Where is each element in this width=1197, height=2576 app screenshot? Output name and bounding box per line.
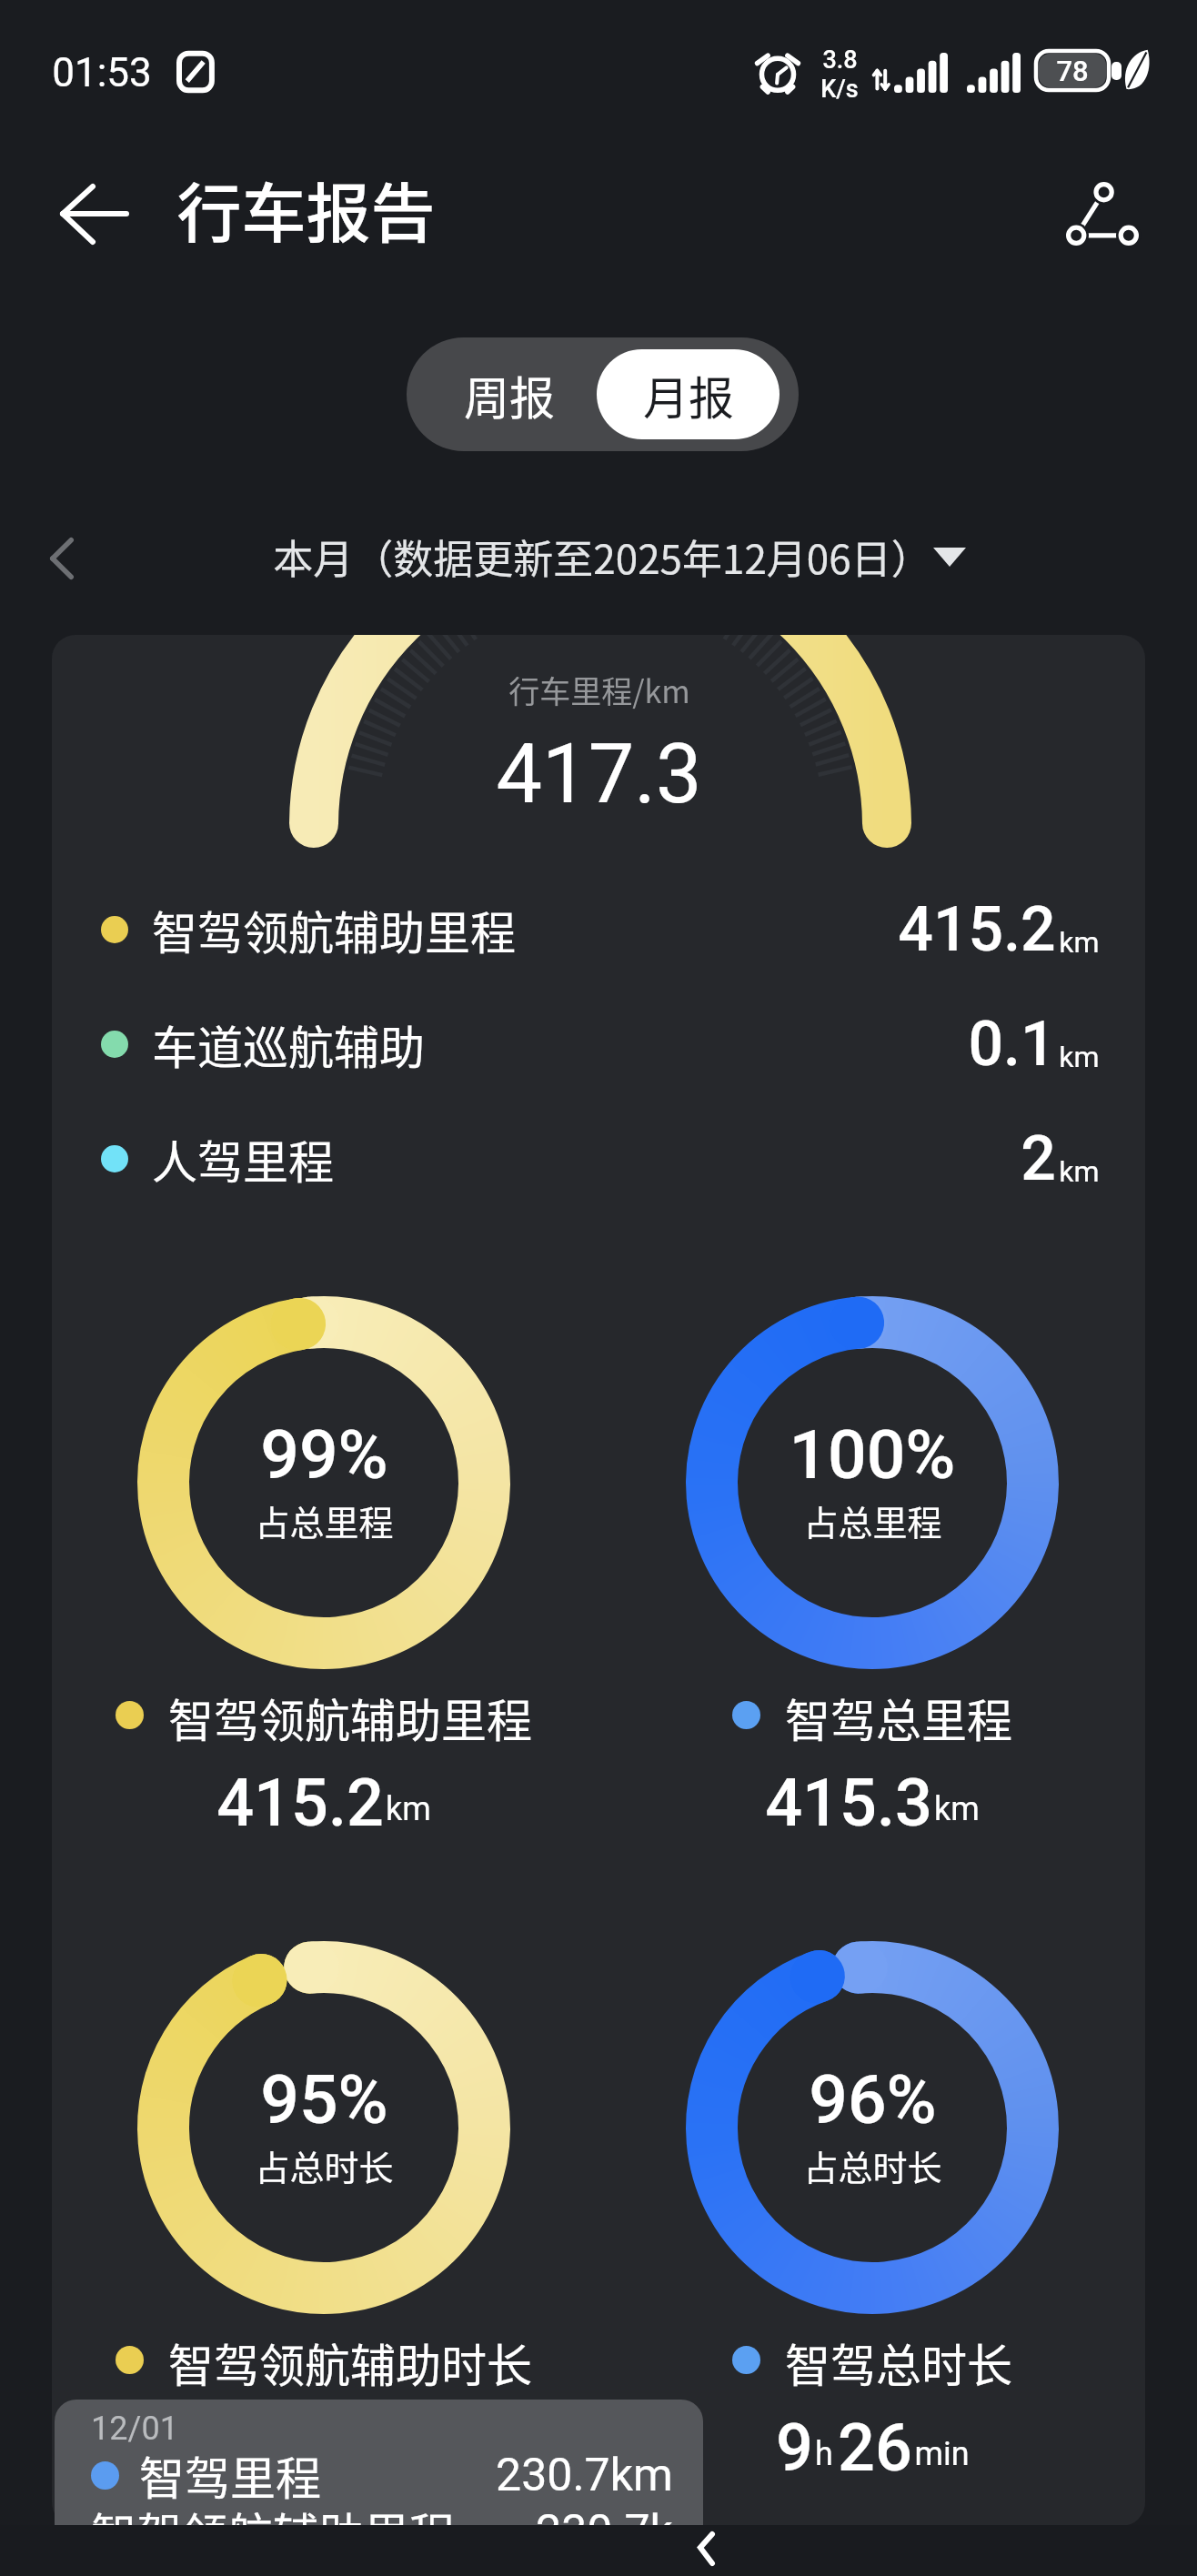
staticText: 智驾领航辅助里程 (168, 1685, 532, 1745)
staticText: 行车里程/km (508, 668, 690, 712)
staticText: 智驾总时长 (785, 2329, 1012, 2390)
staticText: km (934, 1790, 980, 1828)
staticText: 230.7k (536, 2505, 673, 2559)
staticText: 95% (260, 2059, 388, 2139)
staticText: 100% (789, 1414, 956, 1494)
button[interactable]: 智驾领航辅助里程 (52, 872, 1145, 987)
staticText: 8 (227, 2410, 265, 2479)
staticText: 96% (809, 2059, 937, 2139)
staticText: 78 (1056, 55, 1089, 87)
staticText: 占总时长 (255, 2140, 394, 2190)
staticText: km (386, 1790, 431, 1828)
staticText: 占总里程 (803, 1495, 942, 1545)
staticText: 3.8 (822, 45, 858, 75)
button[interactable]: Back (44, 159, 146, 268)
staticText: 行车报告 (176, 162, 436, 256)
button[interactable]: 本月（数据更新至2025年12月06日） (266, 517, 973, 597)
staticText: 月报 (643, 362, 734, 428)
staticText: 58 (289, 2410, 364, 2479)
staticText: 230.7km (496, 2449, 673, 2502)
staticText: 车道巡航辅助 (152, 1011, 425, 1077)
staticText: min (914, 2435, 970, 2473)
staticText: 智驾里程 (139, 2442, 321, 2508)
staticText: 智驾领航辅助里程 (152, 897, 516, 962)
staticText: km (1059, 1154, 1100, 1189)
staticText: km (1059, 1040, 1100, 1074)
other: Handle (698, 2534, 712, 2563)
button[interactable]: 车道巡航辅助 (52, 987, 1145, 1102)
button[interactable]: 人驾里程 (52, 1102, 1145, 1216)
staticText: 本月（数据更新至2025年12月06日） (273, 528, 931, 586)
button[interactable]: 99% (137, 1296, 510, 1669)
staticText: 415.2 (898, 893, 1056, 966)
staticText: 占总时长 (803, 2140, 942, 2190)
staticText: 12/01 (91, 2410, 178, 2448)
staticText: km (1059, 925, 1100, 960)
button[interactable]: 周报 (418, 349, 600, 439)
staticText: 415.3 (765, 1765, 932, 1834)
staticText: 智驾领航辅助里程 (91, 2499, 455, 2564)
staticText: 智驾领航辅助时长 (168, 2329, 532, 2390)
staticText: 415.2 (216, 1765, 384, 1834)
button[interactable]: 100% (686, 1296, 1059, 1669)
staticText: 智驾总里程 (785, 1685, 1012, 1745)
staticText: 01:53 (52, 49, 152, 96)
button[interactable]: Share (1056, 164, 1149, 264)
staticText: 26 (838, 2410, 912, 2479)
staticText: h (815, 2435, 833, 2473)
staticText: 周报 (464, 362, 555, 428)
button[interactable]: 95% (137, 1941, 510, 2314)
staticText: h (267, 2435, 285, 2473)
staticText: 2 (1021, 1122, 1056, 1195)
staticText: 人驾里程 (152, 1126, 334, 1192)
button[interactable]: 月报 (597, 349, 780, 439)
staticText: 99% (260, 1414, 388, 1494)
button[interactable]: 96% (686, 1941, 1059, 2314)
staticText: 0.1 (968, 1008, 1056, 1081)
staticText: 占总里程 (255, 1495, 394, 1545)
staticText: 417.3 (496, 727, 702, 822)
button[interactable]: Previous period (22, 518, 102, 599)
staticText: 9 (776, 2410, 813, 2479)
staticText: K/s (820, 75, 859, 104)
